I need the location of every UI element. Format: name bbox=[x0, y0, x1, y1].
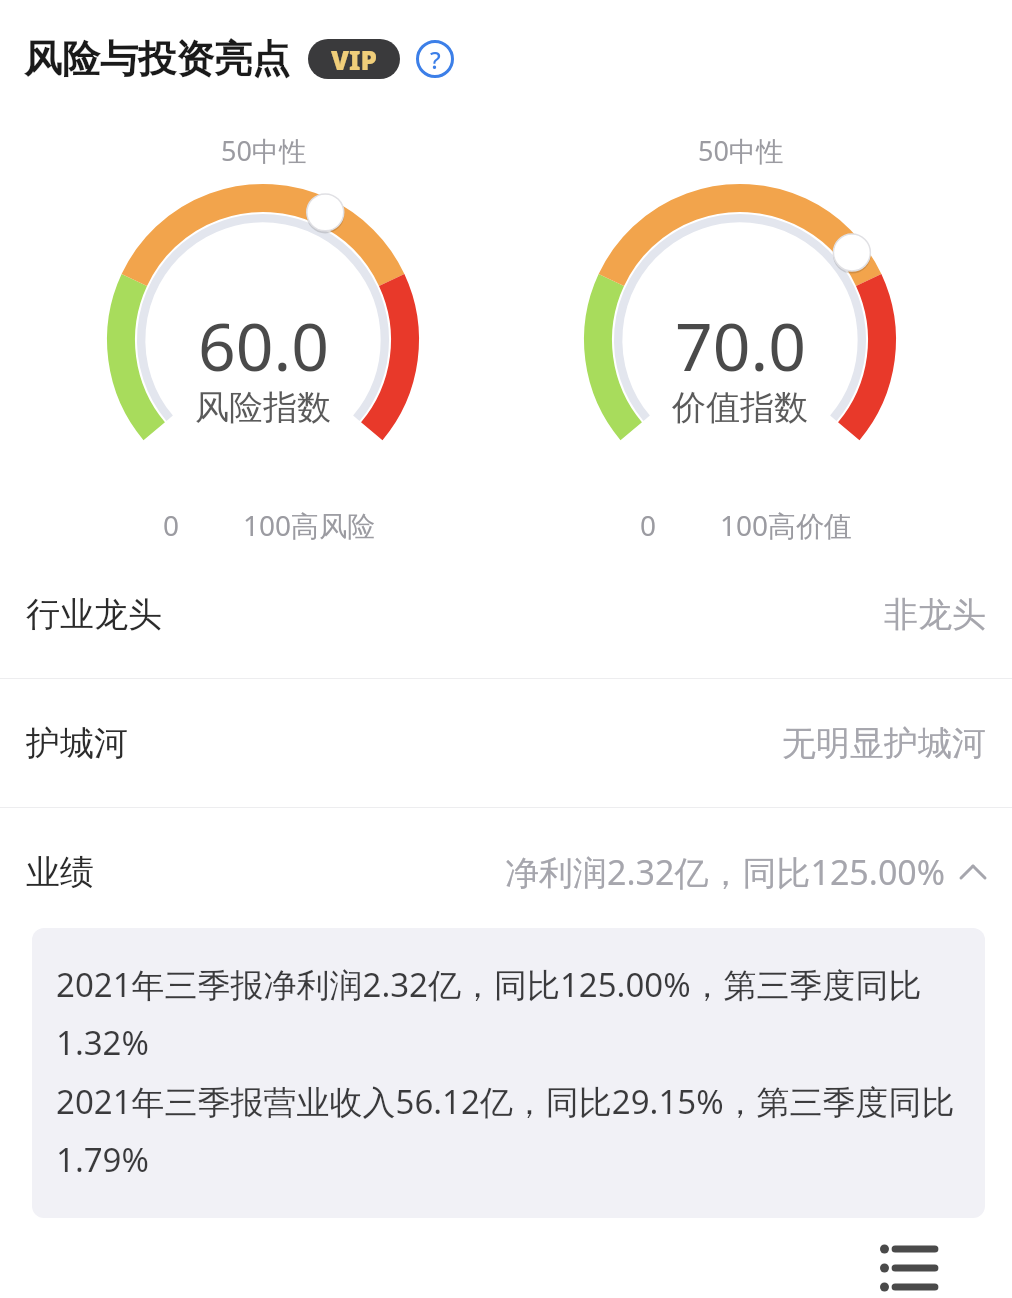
staticText: 价值指数 bbox=[672, 386, 808, 429]
staticText: 100高价值 bbox=[720, 506, 853, 544]
staticText: 60.0 bbox=[198, 300, 329, 390]
button[interactable]: 帮助 bbox=[416, 40, 454, 78]
staticText: ? bbox=[430, 43, 441, 76]
staticText: 2021年三季报净利润2.32亿，同比125.00%，第三季度同比1.32% bbox=[56, 962, 965, 1065]
staticText: 净利润2.32亿，同比125.00% bbox=[505, 849, 946, 895]
staticText: 非龙头 bbox=[884, 593, 986, 636]
button[interactable]: 护城河 bbox=[0, 679, 1012, 807]
button[interactable]: 行业龙头 bbox=[0, 550, 1012, 678]
button[interactable]: VIP bbox=[308, 39, 400, 79]
staticText: 0 bbox=[163, 506, 180, 544]
staticText: 100高风险 bbox=[243, 506, 376, 544]
staticText: 护城河 bbox=[26, 722, 128, 765]
staticText: 70.0 bbox=[675, 300, 806, 390]
staticText: 50中性 bbox=[221, 132, 306, 169]
staticText: 无明显护城河 bbox=[782, 722, 986, 765]
button[interactable]: 目录 bbox=[858, 1218, 958, 1298]
staticText: 0 bbox=[640, 506, 657, 544]
staticText: 风险指数 bbox=[195, 386, 331, 429]
staticText: 行业龙头 bbox=[26, 593, 162, 636]
staticText: 业绩 bbox=[26, 851, 94, 894]
staticText: 50中性 bbox=[698, 132, 783, 169]
staticText: 风险与投资亮点 bbox=[24, 35, 290, 83]
button[interactable]: 业绩 bbox=[0, 808, 1012, 936]
staticText: 2021年三季报营业收入56.12亿，同比29.15%，第三季度同比1.79% bbox=[56, 1079, 965, 1182]
staticText: VIP bbox=[331, 42, 377, 77]
